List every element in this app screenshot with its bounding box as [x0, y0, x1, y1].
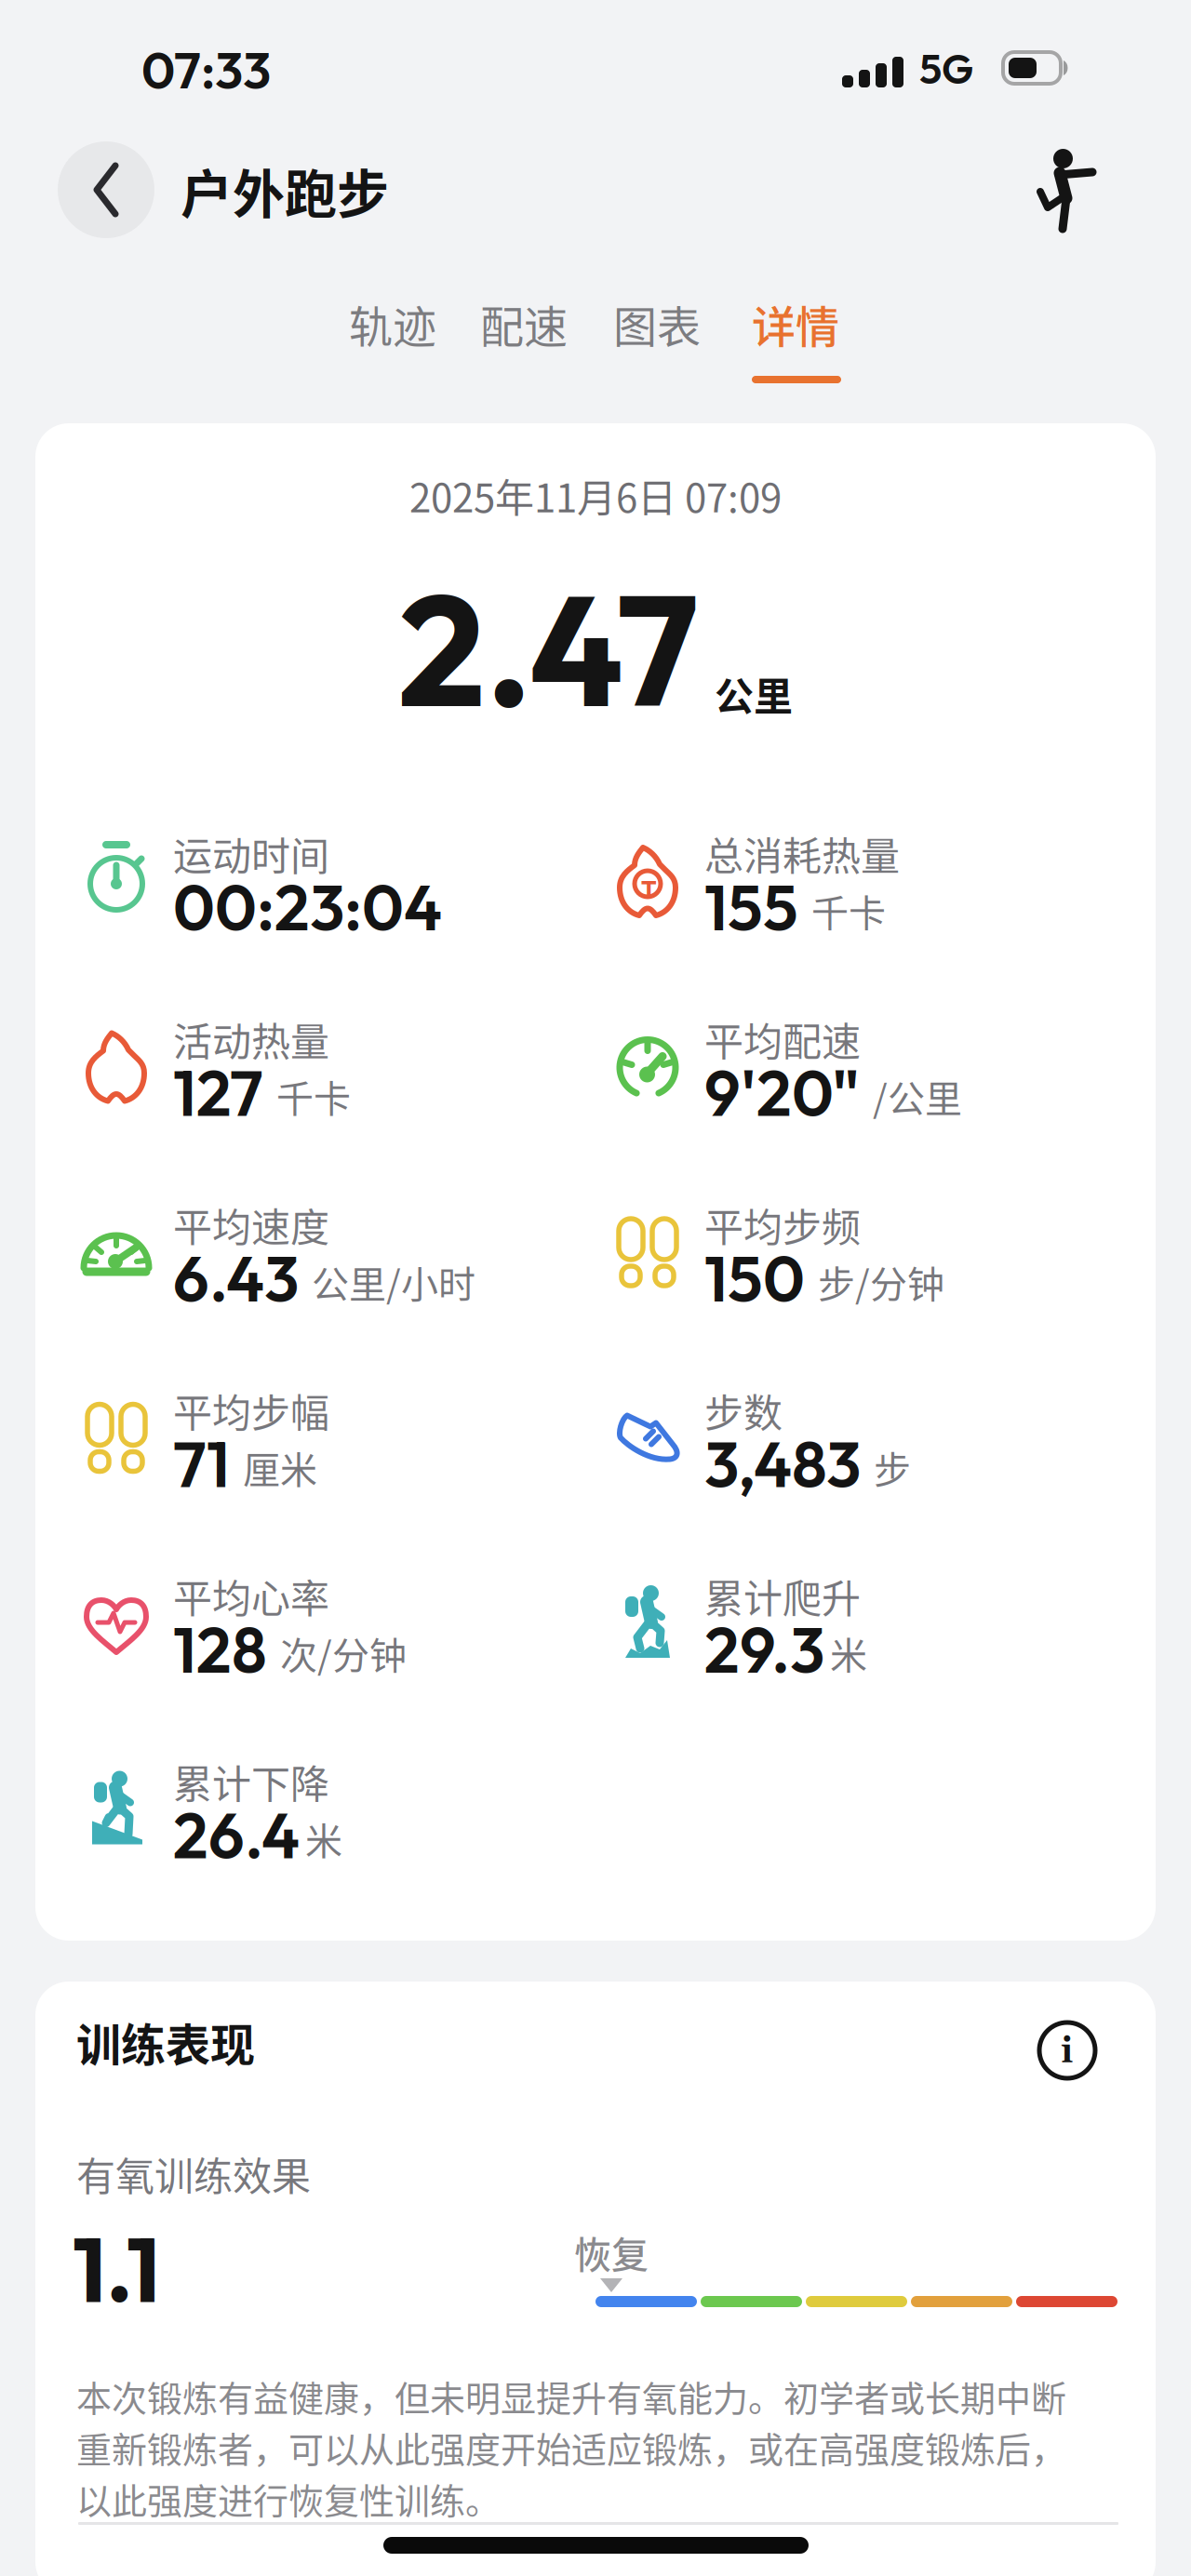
- staticText: 累计爬升: [704, 1568, 861, 1624]
- staticText: 训练表现: [76, 2009, 255, 2074]
- staticText: /公里: [873, 1069, 962, 1123]
- staticText: 本次锻炼有益健康，但未明显提升有氧能力。初学者或长期中断 重新锻炼者，可以从此强…: [76, 2370, 1066, 2524]
- staticText: 有氧训练效果: [76, 2145, 311, 2202]
- staticText: 平均步幅: [173, 1382, 329, 1439]
- staticText: 2025年11月6日 07:09: [409, 467, 782, 524]
- staticText: 千卡: [811, 884, 886, 937]
- staticText: 3,483: [704, 1424, 861, 1504]
- staticText: 平均配速: [704, 1011, 861, 1067]
- staticText: 00:23:04: [173, 867, 442, 947]
- staticText: 71: [173, 1424, 230, 1504]
- staticText: 1.1: [73, 2212, 160, 2325]
- staticText: 户外跑步: [181, 153, 389, 228]
- staticText: 9'20": [704, 1053, 860, 1132]
- button[interactable]: About training performance: [1036, 2019, 1099, 2082]
- staticText: 次/分钟: [280, 1626, 407, 1680]
- staticText: 平均心率: [173, 1568, 329, 1624]
- staticText: 累计下降: [173, 1753, 329, 1810]
- staticText: 5G: [919, 43, 973, 94]
- staticText: 配速: [480, 292, 568, 355]
- staticText: 轨迹: [349, 292, 436, 355]
- staticText: 千卡: [276, 1069, 351, 1123]
- staticText: 厘米: [243, 1440, 317, 1494]
- staticText: 128: [173, 1609, 267, 1689]
- staticText: 6.43: [173, 1238, 299, 1318]
- staticText: 公里/小时: [312, 1255, 475, 1309]
- staticText: 平均步频: [704, 1196, 861, 1253]
- staticText: 150: [704, 1238, 805, 1318]
- staticText: 运动时间: [173, 825, 329, 882]
- staticText: 29.3: [704, 1609, 824, 1689]
- staticText: 步数: [704, 1382, 783, 1439]
- staticText: 米: [305, 1812, 342, 1865]
- staticText: 详情: [752, 292, 839, 355]
- staticText: 米: [830, 1626, 867, 1680]
- staticText: 恢复: [574, 2225, 649, 2279]
- staticText: 127: [173, 1053, 263, 1132]
- button[interactable]: 详情: [752, 292, 839, 355]
- button[interactable]: 配速: [480, 292, 568, 355]
- staticText: 155: [704, 867, 798, 947]
- staticText: 步/分钟: [818, 1255, 944, 1309]
- staticText: 2.47: [398, 552, 698, 746]
- staticText: 26.4: [173, 1795, 300, 1875]
- button[interactable]: Workout animation: [1035, 147, 1100, 231]
- button[interactable]: 轨迹: [349, 292, 436, 355]
- button[interactable]: 图表: [613, 292, 701, 355]
- staticText: 公里: [715, 665, 793, 722]
- staticText: 平均速度: [173, 1196, 329, 1253]
- staticText: 活动热量: [173, 1011, 329, 1067]
- button[interactable]: Back: [58, 141, 154, 238]
- staticText: 总消耗热量: [704, 825, 900, 882]
- staticText: T: [641, 874, 657, 904]
- staticText: i: [1061, 2030, 1073, 2074]
- staticText: 步: [874, 1440, 911, 1494]
- staticText: 07:33: [141, 37, 271, 102]
- staticText: 图表: [613, 292, 701, 355]
